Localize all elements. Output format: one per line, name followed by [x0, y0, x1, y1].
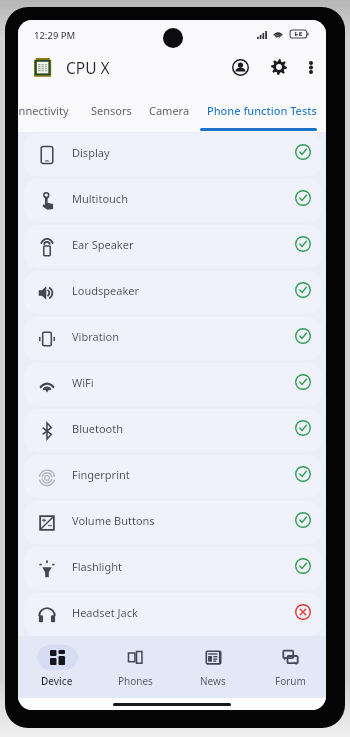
button[interactable]: Vibration [24, 317, 322, 360]
staticText: Bluetooth [72, 421, 124, 436]
staticText: Headset Jack [72, 605, 138, 620]
staticText: News [200, 674, 226, 688]
staticText: Fingerprint [72, 467, 130, 482]
staticText: 12:29 PM [34, 29, 76, 42]
staticText: Connectivity [18, 103, 69, 118]
button[interactable]: Headset Jack [24, 593, 322, 636]
button[interactable]: Bluetooth [24, 409, 322, 452]
staticText: WiFi [72, 375, 94, 390]
staticText: Loudspeaker [72, 283, 140, 298]
staticText: Volume Buttons [72, 513, 155, 528]
staticText: Phone function Tests [207, 103, 317, 118]
button[interactable]: Camera [140, 86, 198, 132]
staticText: Sensors [91, 103, 132, 118]
button[interactable]: Account [228, 53, 256, 81]
staticText: Phones [118, 674, 153, 688]
staticText: Ear Speaker [72, 237, 134, 252]
button[interactable]: Display [24, 133, 322, 176]
button[interactable]: News [178, 635, 248, 697]
staticText: CPU X [66, 57, 110, 78]
staticText: Multitouch [72, 191, 128, 206]
button[interactable]: More options [298, 54, 324, 80]
staticText: Camera [149, 103, 190, 118]
button[interactable]: Connectivity [18, 86, 82, 132]
button[interactable]: Phone function Tests [198, 86, 326, 132]
staticText: Vibration [72, 329, 119, 344]
button[interactable]: Device [22, 635, 92, 697]
button[interactable]: Ear Speaker [24, 225, 322, 268]
button[interactable]: Multitouch [24, 179, 322, 222]
staticText: Forum [275, 674, 306, 688]
button[interactable]: Phones [100, 635, 170, 697]
button[interactable]: Loudspeaker [24, 271, 322, 314]
button[interactable]: WiFi [24, 363, 322, 406]
button[interactable]: Fingerprint [24, 455, 322, 498]
staticText: Flashlight [72, 559, 122, 574]
staticText: Display [72, 145, 110, 160]
button[interactable]: Forum [255, 635, 325, 697]
button[interactable]: Sensors [82, 86, 140, 132]
staticText: Device [41, 674, 73, 688]
button[interactable]: Settings [265, 53, 293, 81]
button[interactable]: Volume Buttons [24, 501, 322, 544]
button[interactable]: Flashlight [24, 547, 322, 590]
